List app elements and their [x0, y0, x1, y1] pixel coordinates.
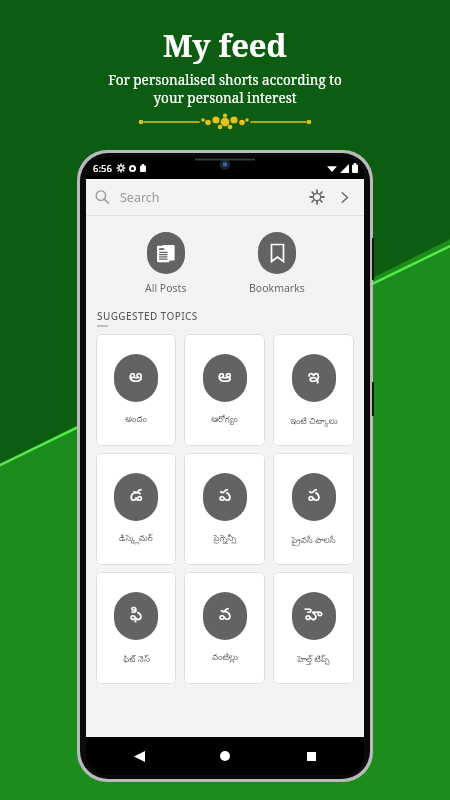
button[interactable]: హె [273, 572, 354, 684]
staticText: అందం [125, 415, 147, 426]
button[interactable]: More [333, 186, 355, 208]
staticText: ప్రైవసీ పాలసీ [291, 534, 336, 547]
staticText: ఇంటి చిట్కాలు [290, 415, 338, 428]
staticText: SUGGESTED TOPICS [97, 309, 198, 323]
button[interactable]: All Posts [141, 228, 191, 299]
staticText: ప [219, 486, 232, 509]
button[interactable]: Back [124, 741, 154, 771]
staticText: అ [129, 367, 143, 390]
button[interactable]: Settings [306, 186, 328, 208]
staticText: For personalised shorts according to you… [108, 71, 342, 107]
button[interactable]: ప [184, 453, 265, 565]
staticText: డిస్క్లెమర్ [119, 534, 153, 545]
staticText: ఫి [130, 605, 143, 628]
staticText: 6:56 [93, 162, 112, 175]
staticText: ఆరోగ్యం [211, 415, 238, 426]
staticText: ఇ [308, 367, 320, 390]
staticText: ప [308, 486, 321, 509]
staticText: ప్రెగ్నెన్సీ [213, 534, 237, 545]
staticText: All Posts [145, 281, 187, 295]
button[interactable]: ఆ [184, 334, 265, 446]
staticText: హె [305, 605, 323, 628]
button[interactable]: ఇ [273, 334, 354, 446]
button[interactable]: Recent apps [296, 741, 326, 771]
staticText: వ [219, 605, 232, 628]
staticText: డ [130, 486, 143, 509]
button[interactable]: Home [210, 741, 240, 771]
staticText: ఫిట్ నెస్ [123, 653, 150, 666]
button[interactable]: అ [96, 334, 176, 446]
staticText: My feed [163, 24, 287, 66]
staticText: Search [120, 189, 160, 206]
staticText: ఆ [218, 367, 232, 390]
button[interactable]: Search [86, 179, 364, 215]
staticText: వంటిల్లు [212, 653, 238, 664]
button[interactable]: ప [273, 453, 354, 565]
button[interactable]: ఫి [96, 572, 176, 684]
button[interactable]: డ [96, 453, 176, 565]
staticText: Bookmarks [249, 281, 305, 295]
button[interactable]: వ [184, 572, 265, 684]
staticText: హెల్త్ టిప్స్ [297, 653, 330, 666]
button[interactable]: Bookmarks [245, 228, 309, 299]
